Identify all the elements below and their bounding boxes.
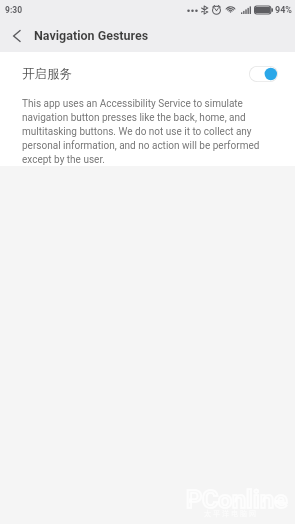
staticText: Navigation Gestures (34, 28, 149, 43)
staticText: 9:30 (5, 5, 23, 15)
staticText: This app uses an Accessibility Service t… (22, 98, 273, 166)
button[interactable]: 开启服务 (0, 52, 295, 96)
staticText: 开启服务 (22, 66, 72, 82)
staticText: 94% (275, 5, 292, 16)
button[interactable]: Back (0, 20, 34, 52)
